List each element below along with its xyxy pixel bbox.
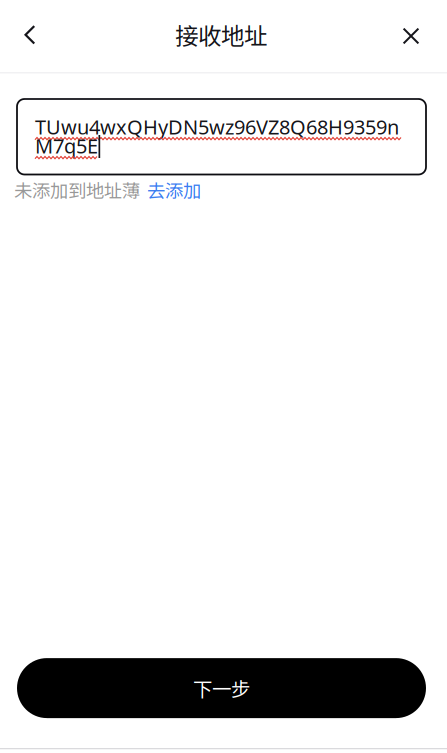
staticText: 接收地址 <box>175 17 267 51</box>
button[interactable]: 去添加 <box>147 176 201 203</box>
staticText: 下一步 <box>193 674 250 702</box>
staticText: TUwu4wxQHyDN5wz96VZ8Q68H9359n <box>35 113 399 140</box>
button[interactable]: Back <box>0 6 60 66</box>
staticText: M7q5E <box>35 132 98 159</box>
button[interactable]: Close <box>383 6 439 66</box>
staticText: 去添加 <box>147 176 201 203</box>
button[interactable]: 下一步 <box>17 658 426 718</box>
staticText: 未添加到地址薄 <box>14 176 140 203</box>
